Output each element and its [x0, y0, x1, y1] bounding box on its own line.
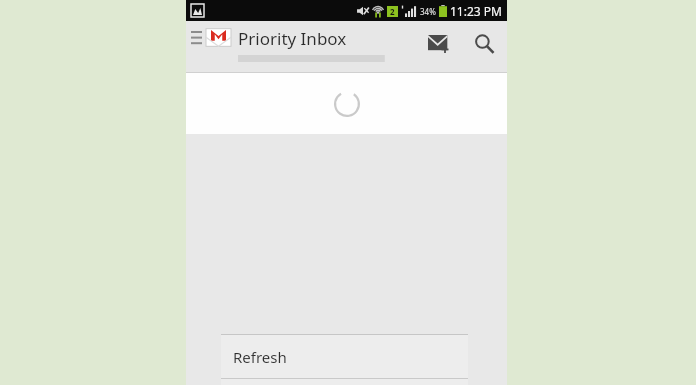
- staticText: 11:23 PM: [450, 3, 502, 19]
- staticText: 34%: [420, 6, 436, 17]
- staticText: 2: [390, 6, 395, 17]
- staticText: Priority Inbox: [238, 27, 347, 50]
- button[interactable]: Refresh: [221, 335, 468, 378]
- button[interactable]: Compose: [417, 21, 462, 67]
- button[interactable]: Search: [462, 21, 507, 67]
- button[interactable]: Open navigation drawer: [186, 21, 233, 54]
- staticText: Refresh: [233, 347, 287, 367]
